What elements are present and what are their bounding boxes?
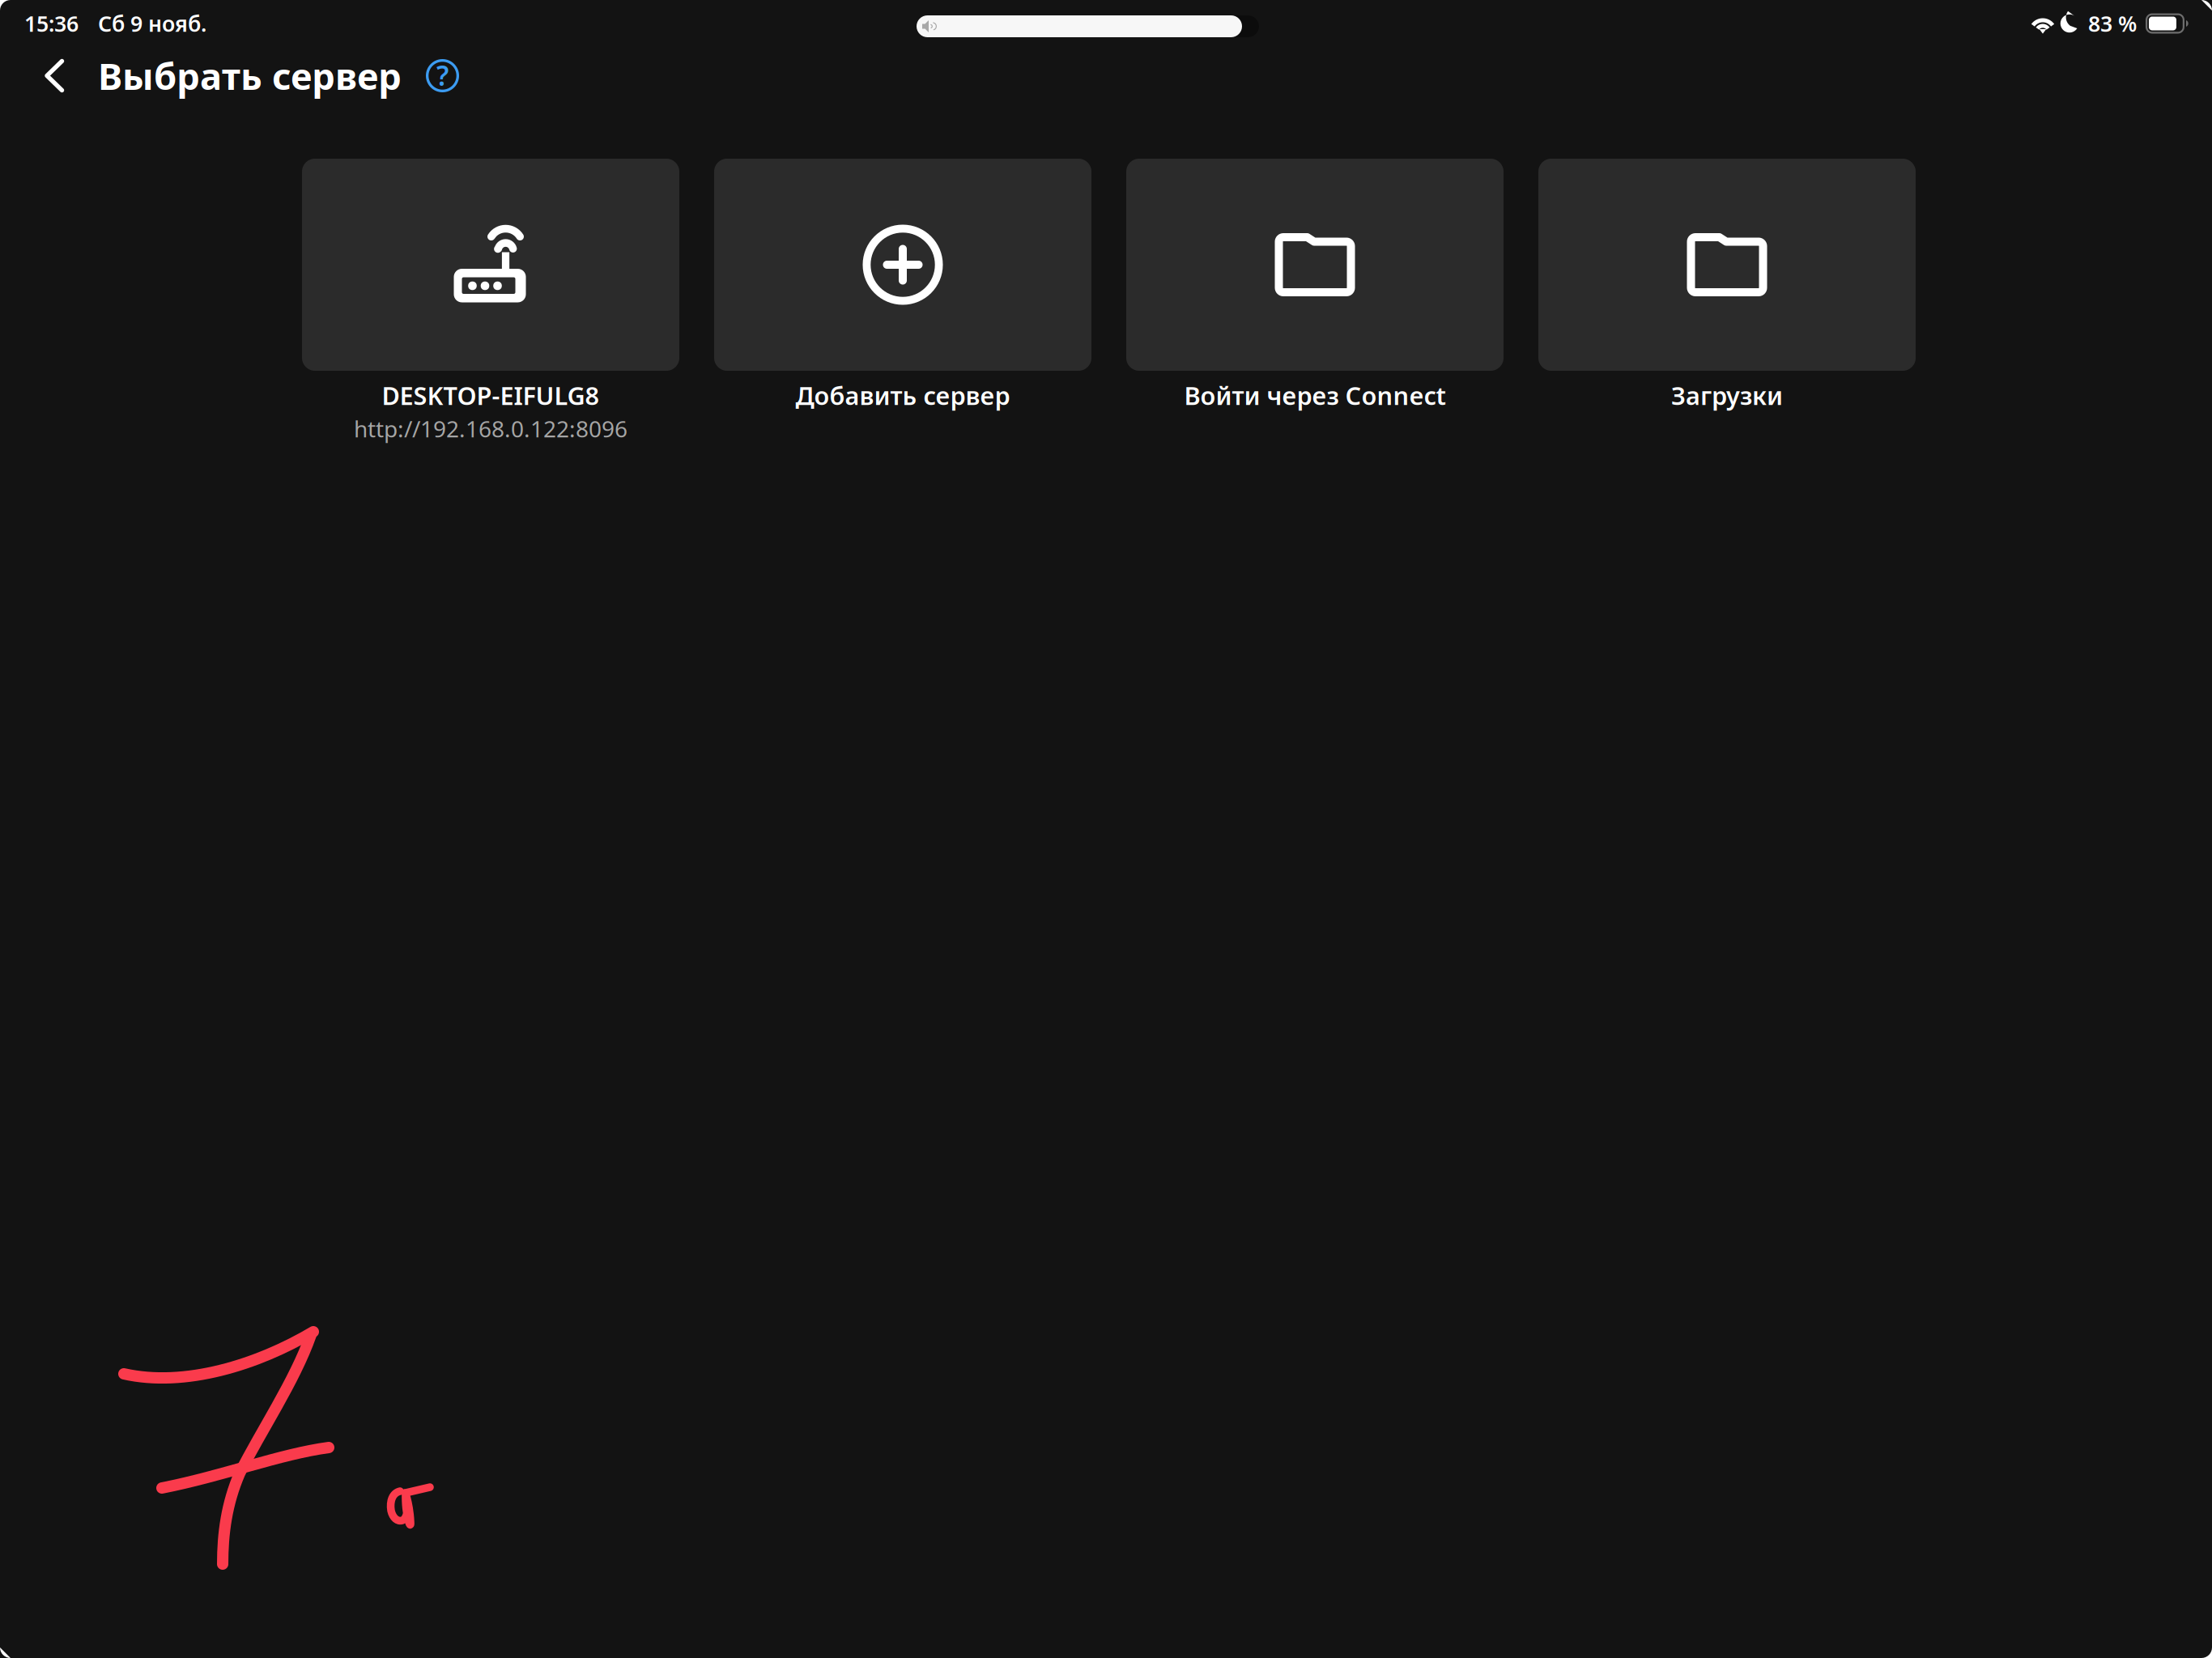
staticText: Войти через Connect: [1184, 379, 1446, 412]
staticText: ?: [436, 57, 449, 93]
button[interactable]: DESKTOP-EIFULG8: [302, 159, 679, 881]
staticText: Добавить сервер: [795, 379, 1010, 412]
button[interactable]: Справка: [417, 50, 468, 101]
button[interactable]: Назад: [34, 49, 75, 102]
staticText: 15:36: [24, 9, 79, 38]
staticText: Сб 9 нояб.: [98, 9, 206, 38]
button[interactable]: Войти через Connect: [1126, 159, 1504, 881]
staticText: Загрузки: [1671, 379, 1783, 412]
button[interactable]: Загрузки: [1538, 159, 1916, 881]
button[interactable]: Добавить сервер: [714, 159, 1091, 881]
staticText: http://192.168.0.122:8096: [354, 413, 627, 444]
staticText: DESKTOP-EIFULG8: [382, 379, 600, 412]
staticText: Выбрать сервер: [98, 51, 402, 100]
staticText: 83 %: [2088, 9, 2137, 38]
